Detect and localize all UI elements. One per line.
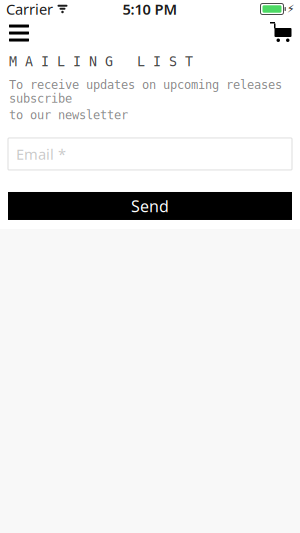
button[interactable]: Send: [8, 192, 292, 220]
button[interactable]: Menu: [4, 19, 34, 47]
staticText: To receive updates on upcoming releases …: [9, 78, 282, 105]
staticText: M A I L I N G L I S T: [9, 54, 193, 69]
staticText: Email *: [16, 144, 66, 164]
staticText: to our newsletter: [9, 108, 128, 122]
staticText: Send: [131, 195, 169, 217]
staticText: 5:10 PM: [122, 0, 177, 19]
button[interactable]: Cart: [266, 19, 296, 47]
button[interactable]: Email *: [8, 138, 292, 170]
staticText: ⚡︎: [287, 3, 294, 15]
staticText: Carrier: [6, 0, 53, 19]
